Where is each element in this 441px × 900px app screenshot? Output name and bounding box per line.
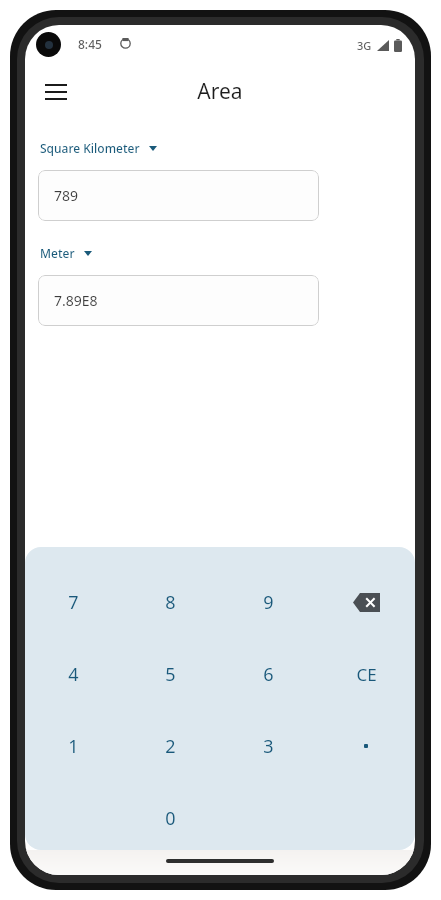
staticText: Square Kilometer	[40, 140, 140, 156]
staticText: 7	[68, 590, 79, 615]
staticText: 8	[165, 590, 176, 615]
staticText: 8:45	[78, 36, 102, 52]
staticText: 5	[165, 662, 176, 687]
staticText: Meter	[40, 245, 75, 261]
staticText: CE	[356, 663, 377, 686]
button[interactable]: Open navigation menu	[34, 70, 78, 114]
button[interactable]: Meter	[38, 242, 94, 264]
button[interactable]: 789	[38, 170, 319, 221]
button[interactable]: 6	[219, 644, 317, 704]
staticText: 3G	[357, 38, 372, 53]
staticText: 4	[68, 662, 79, 687]
staticText: 6	[263, 662, 274, 687]
staticText: 7.89E8	[54, 291, 98, 310]
button[interactable]: Backspace	[317, 572, 415, 632]
staticText: 2	[165, 734, 176, 759]
staticText: 0	[165, 806, 176, 831]
button[interactable]: 4	[25, 644, 122, 704]
button[interactable]: 7.89E8	[38, 275, 319, 326]
button[interactable]: Square Kilometer	[38, 137, 159, 159]
button[interactable]: 1	[25, 716, 122, 776]
button[interactable]: 0	[122, 788, 219, 848]
button[interactable]: CE	[317, 644, 415, 704]
staticText: 3	[263, 734, 274, 759]
button[interactable]: 5	[122, 644, 219, 704]
button[interactable]: Decimal point	[317, 716, 415, 776]
button[interactable]: 8	[122, 572, 219, 632]
staticText: Area	[197, 77, 243, 106]
staticText: 789	[54, 186, 79, 205]
staticText: 1	[68, 734, 79, 759]
button[interactable]: 9	[219, 572, 317, 632]
staticText: 9	[263, 590, 274, 615]
button[interactable]: 3	[219, 716, 317, 776]
button[interactable]: 7	[25, 572, 122, 632]
button[interactable]: 2	[122, 716, 219, 776]
